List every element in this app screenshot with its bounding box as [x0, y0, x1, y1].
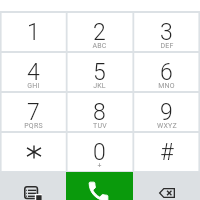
button[interactable]: 5: [66, 52, 133, 92]
staticText: 8: [93, 99, 106, 126]
staticText: 4: [27, 59, 40, 86]
staticText: 9: [160, 99, 173, 126]
staticText: #: [160, 139, 174, 166]
button[interactable]: 3: [133, 12, 200, 52]
button[interactable]: 2: [66, 12, 133, 52]
button[interactable]: 6: [133, 52, 200, 92]
staticText: MNO: [158, 82, 175, 90]
staticText: 7: [27, 99, 40, 126]
button[interactable]: Messages: [0, 172, 66, 200]
staticText: JKL: [93, 82, 106, 90]
button[interactable]: 1: [0, 12, 66, 52]
staticText: GHI: [27, 82, 40, 90]
button[interactable]: Call: [66, 172, 133, 200]
staticText: DEF: [160, 42, 174, 50]
staticText: 2: [93, 19, 106, 46]
staticText: ABC: [92, 42, 107, 50]
staticText: 5: [93, 59, 106, 86]
button[interactable]: 9: [133, 92, 200, 132]
button[interactable]: Star: [0, 132, 66, 172]
staticText: 1: [27, 19, 40, 46]
staticText: PQRS: [24, 122, 43, 130]
staticText: 3: [160, 19, 173, 46]
button[interactable]: 8: [66, 92, 133, 132]
button[interactable]: 7: [0, 92, 66, 132]
staticText: WXYZ: [157, 122, 177, 130]
staticText: TUV: [93, 122, 107, 130]
button[interactable]: Backspace: [133, 172, 200, 200]
button[interactable]: #: [133, 132, 200, 172]
button[interactable]: 4: [0, 52, 66, 92]
staticText: 6: [160, 59, 173, 86]
staticText: +: [97, 162, 102, 170]
button[interactable]: 0: [66, 132, 133, 172]
staticText: 0: [93, 139, 106, 166]
